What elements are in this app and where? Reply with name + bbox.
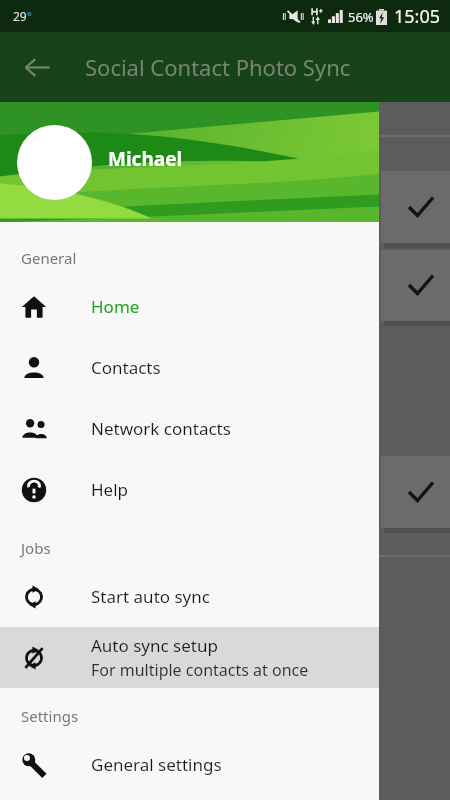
button[interactable]: Back [12, 42, 62, 92]
staticText: 15:05 [394, 4, 441, 29]
staticText: Network contacts [91, 417, 231, 440]
button[interactable]: Help [0, 459, 379, 520]
staticText: Settings [21, 706, 79, 726]
staticText: Home [91, 295, 140, 318]
staticText: Jobs [21, 538, 51, 558]
staticText: Contacts [91, 356, 161, 379]
staticText: ° [27, 8, 32, 23]
staticText: Michael [108, 146, 183, 172]
staticText: For multiple contacts at once [91, 659, 309, 681]
button[interactable]: Home [0, 276, 379, 337]
staticText: 56% [348, 8, 374, 26]
button[interactable]: Contacts [0, 337, 379, 398]
button[interactable]: General settings [0, 734, 379, 795]
staticText: Auto sync setup [91, 634, 218, 657]
staticText: 29 [13, 8, 27, 24]
staticText: General [21, 248, 77, 268]
button[interactable]: Network contacts [0, 398, 379, 459]
staticText: Help [91, 478, 129, 501]
staticText: General settings [91, 753, 222, 776]
staticText: Social Contact Photo Sync [85, 52, 351, 82]
button[interactable]: Auto sync setup [0, 627, 379, 688]
staticText: Start auto sync [91, 585, 210, 608]
button[interactable]: Start auto sync [0, 566, 379, 627]
